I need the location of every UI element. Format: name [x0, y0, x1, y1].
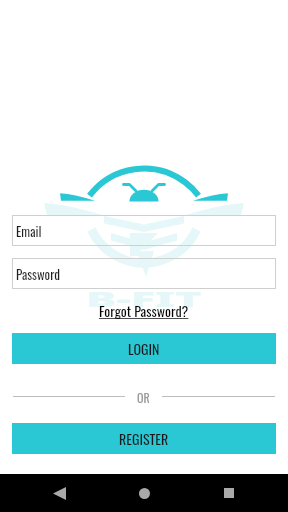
button[interactable]: Password — [12, 258, 276, 289]
button[interactable]: Recent apps — [203, 474, 255, 512]
staticText: Forgot Password? — [99, 300, 189, 321]
staticText: Email — [16, 221, 42, 240]
staticText: Password — [16, 264, 61, 283]
button[interactable]: Home — [118, 474, 170, 512]
button[interactable]: Email — [12, 215, 276, 246]
button[interactable]: Forgot Password? — [95, 299, 193, 322]
staticText: LOGIN — [128, 338, 160, 359]
button[interactable]: REGISTER — [12, 423, 276, 454]
staticText: OR — [137, 389, 150, 404]
button[interactable]: Back — [33, 474, 85, 512]
staticText: B-FIT — [86, 285, 202, 314]
button[interactable]: LOGIN — [12, 333, 276, 364]
staticText: REGISTER — [119, 428, 169, 449]
